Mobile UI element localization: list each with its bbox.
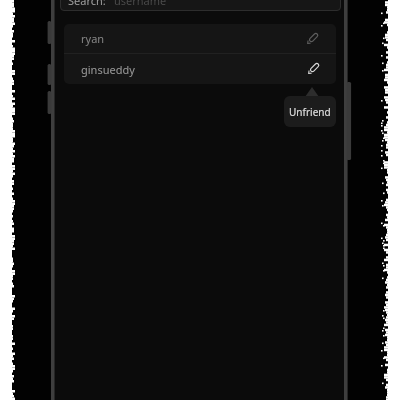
staticText: Unfriend — [289, 105, 331, 119]
button[interactable]: ginsueddy — [64, 54, 336, 84]
staticText: ginsueddy — [81, 62, 135, 77]
button[interactable]: Unfriend — [284, 96, 336, 127]
staticText: username — [114, 0, 167, 8]
staticText: ryan — [81, 31, 105, 46]
button[interactable] — [60, 0, 341, 11]
staticText: Search: — [68, 0, 106, 8]
button[interactable]: ryan — [64, 24, 336, 53]
